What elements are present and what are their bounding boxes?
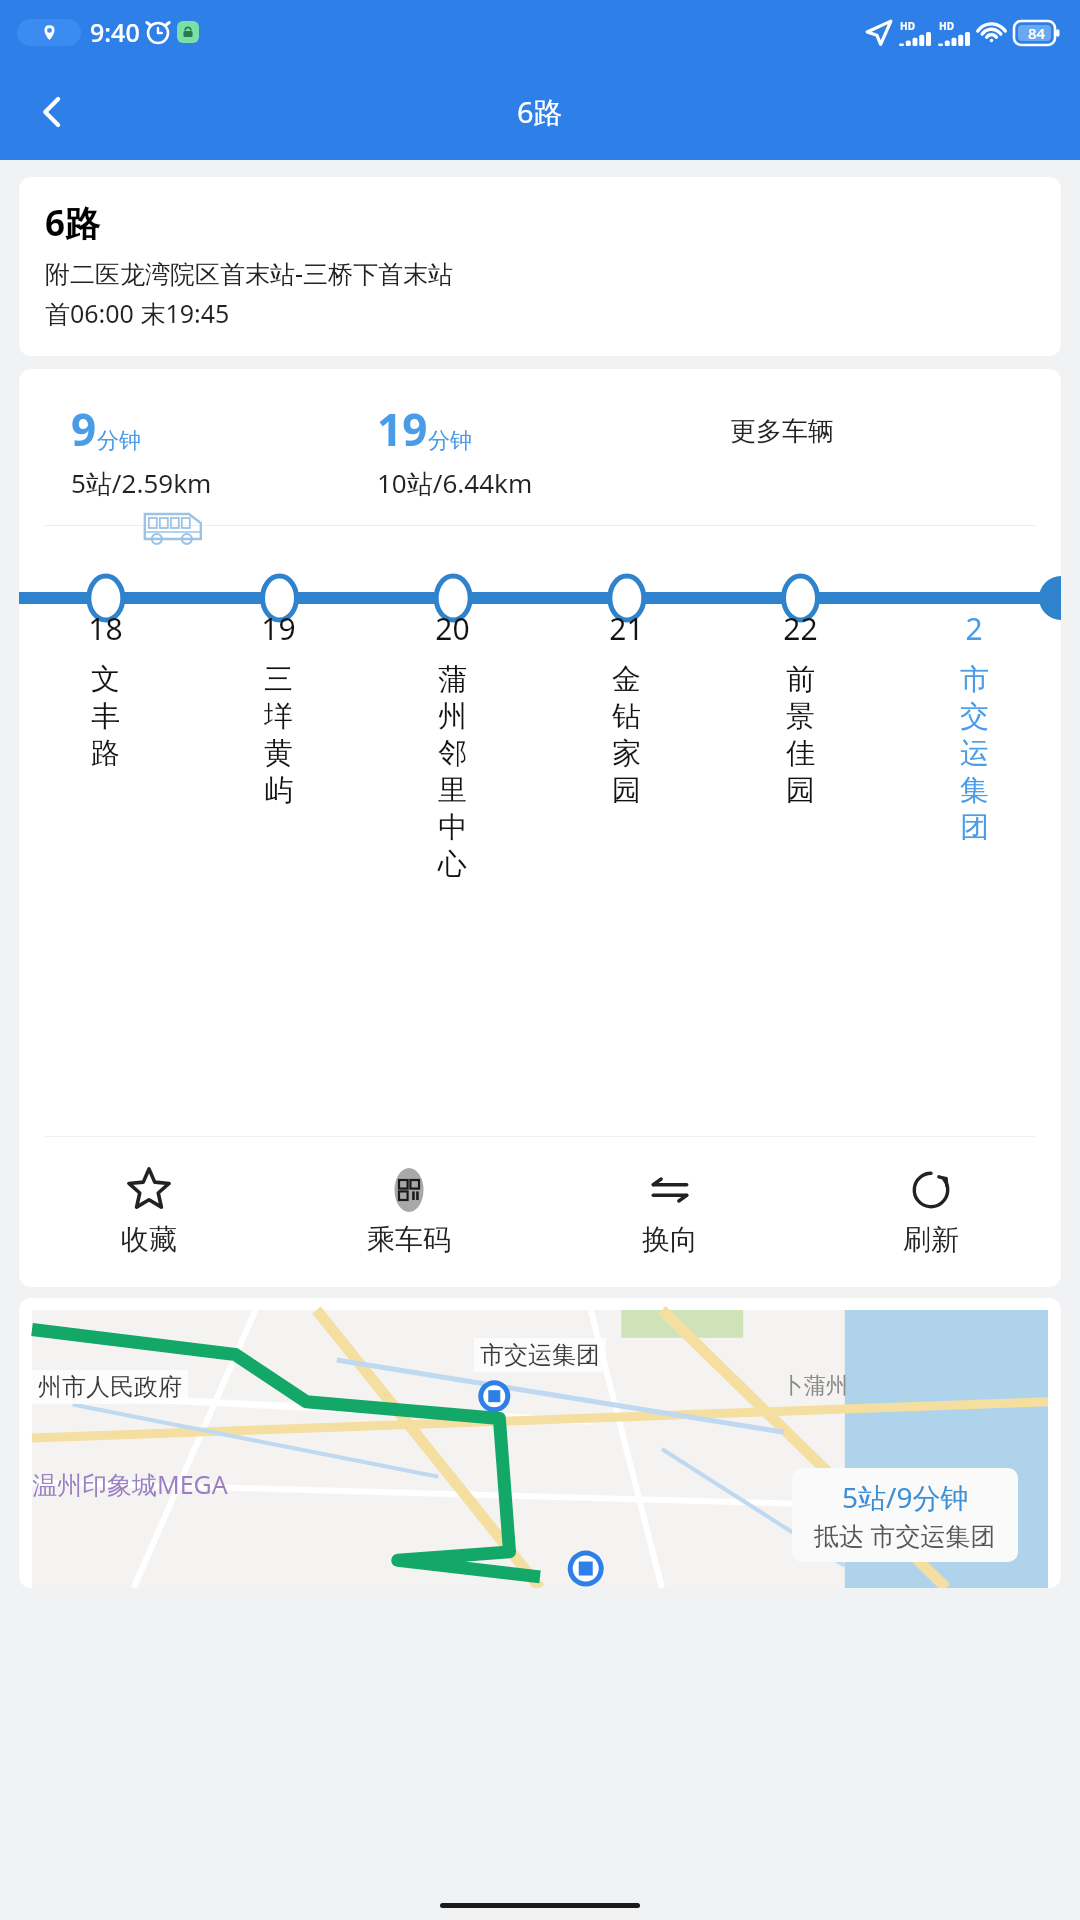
staticText: 卜蒲州 <box>782 1372 848 1400</box>
staticText: 金 <box>612 661 641 698</box>
staticText: 10站/6.44km <box>377 465 533 501</box>
button[interactable]: 换向 <box>539 1137 800 1287</box>
staticText: 屿 <box>264 772 293 809</box>
staticText: 附二医龙湾院区首末站-三桥下首末站 <box>45 256 454 290</box>
staticText: 交 <box>960 698 989 735</box>
button[interactable]: 9 <box>71 399 367 501</box>
staticText: 邻 <box>438 735 467 772</box>
staticText: 里 <box>438 772 467 809</box>
staticText: 黄 <box>264 735 293 772</box>
staticText: 20 <box>435 608 470 649</box>
staticText: 前 <box>786 661 815 698</box>
staticText: 市交运集团 <box>480 1340 600 1370</box>
staticText: 更多车辆 <box>730 415 834 448</box>
staticText: 6路 <box>517 92 563 132</box>
button[interactable]: 19 <box>192 608 365 809</box>
staticText: 丰 <box>91 698 120 735</box>
staticText: 中 <box>438 809 467 846</box>
staticText: 分钟 <box>428 427 472 455</box>
staticText: 蒲 <box>438 661 467 698</box>
staticText: 文 <box>91 661 120 698</box>
staticText: 乘车码 <box>367 1222 451 1257</box>
button[interactable]: Back <box>22 82 82 142</box>
button[interactable]: 6路 <box>19 177 1061 356</box>
staticText: 佳 <box>786 735 815 772</box>
button[interactable]: 刷新 <box>800 1137 1061 1287</box>
staticText: 5站/9分钟 <box>842 1478 969 1516</box>
staticText: HD <box>939 19 954 33</box>
staticText: 三 <box>264 661 293 698</box>
staticText: 21 <box>609 608 644 649</box>
staticText: 22 <box>783 608 818 649</box>
button[interactable]: 20 <box>365 608 539 883</box>
button[interactable]: 21 <box>539 608 713 809</box>
staticText: 换向 <box>642 1222 698 1257</box>
button[interactable]: 22 <box>713 608 887 809</box>
button[interactable]: 市交运集团 <box>32 1310 1048 1588</box>
staticText: 园 <box>612 772 641 809</box>
staticText: 抵达 市交运集团 <box>814 1518 996 1552</box>
staticText: 19 <box>377 399 428 459</box>
staticText: 心 <box>438 846 467 883</box>
button[interactable]: 收藏 <box>19 1137 279 1287</box>
staticText: 刷新 <box>903 1222 959 1257</box>
staticText: 5站/2.59km <box>71 465 212 501</box>
staticText: 收藏 <box>121 1222 177 1257</box>
staticText: 家 <box>612 735 641 772</box>
staticText: 9 <box>71 399 97 459</box>
staticText: HD <box>900 19 915 33</box>
staticText: 市 <box>960 661 989 698</box>
staticText: 6路 <box>45 199 101 247</box>
staticText: 19 <box>261 608 296 649</box>
staticText: 钻 <box>612 698 641 735</box>
button[interactable]: 更多车辆 <box>714 399 1061 448</box>
staticText: 18 <box>88 608 123 649</box>
staticText: 2 <box>965 608 983 649</box>
staticText: 州 <box>438 698 467 735</box>
staticText: 84 <box>1028 23 1046 43</box>
staticText: 团 <box>960 809 989 846</box>
staticText: 9:40 <box>90 15 140 49</box>
staticText: 州市人民政府 <box>38 1372 182 1402</box>
staticText: 运 <box>960 735 989 772</box>
button[interactable]: 2 <box>887 608 1061 846</box>
staticText: 景 <box>786 698 815 735</box>
staticText: 园 <box>786 772 815 809</box>
staticText: 路 <box>91 735 120 772</box>
staticText: 首06:00 末19:45 <box>45 296 230 330</box>
button[interactable]: 18 <box>19 608 192 772</box>
staticText: 垟 <box>264 698 293 735</box>
button[interactable]: 乘车码 <box>279 1137 539 1287</box>
button[interactable]: 19 <box>377 399 714 501</box>
staticText: 分钟 <box>97 427 141 455</box>
staticText: 温州印象城MEGA <box>32 1467 228 1501</box>
staticText: 集 <box>960 772 989 809</box>
